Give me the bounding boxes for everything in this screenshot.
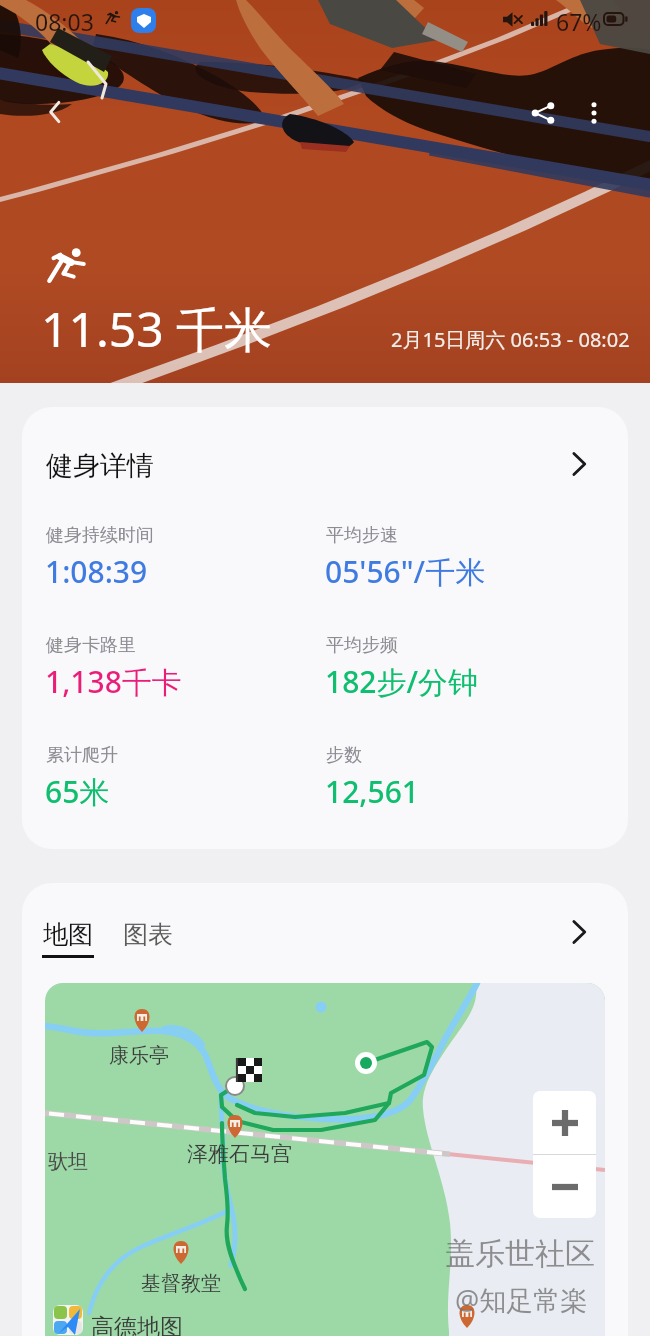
staticText: 平均步频 <box>326 634 398 657</box>
button[interactable]: Open map <box>562 915 596 949</box>
staticText: 知坑 <box>550 1179 584 1200</box>
staticText: 1,138千卡 <box>45 661 182 702</box>
staticText: 地图 <box>43 919 93 950</box>
staticText: 健身卡路里 <box>46 634 136 657</box>
staticText: 基督教堂 <box>141 1271 221 1296</box>
staticText: 1:08:39 <box>45 551 148 592</box>
staticText: 12,561 <box>325 771 419 812</box>
staticText: @知足常楽 <box>455 1281 588 1318</box>
staticText: 67% <box>556 6 602 37</box>
button[interactable]: Share <box>517 87 569 139</box>
staticText: 健身持续时间 <box>46 524 154 547</box>
staticText: 驮坦 <box>48 1149 88 1174</box>
staticText: 182步/分钟 <box>325 661 479 702</box>
button[interactable]: Zoom out <box>533 1155 596 1218</box>
staticText: 11.53 千米 <box>41 296 273 362</box>
button[interactable]: 健身详情 <box>22 407 628 849</box>
staticText: 2月15日周六 06:53 - 08:02 <box>391 326 630 353</box>
staticText: 步数 <box>326 744 362 767</box>
staticText: 盖乐世社区 <box>445 1235 595 1273</box>
staticText: 05'56"/千米 <box>325 551 486 592</box>
staticText: 高德地图 <box>91 1313 183 1336</box>
button[interactable]: 图表 <box>123 919 173 950</box>
button[interactable]: More options <box>568 87 620 139</box>
button[interactable]: Zoom in <box>533 1091 596 1154</box>
staticText: 健身详情 <box>46 449 154 483</box>
staticText: 平均步速 <box>326 524 398 547</box>
staticText: 康乐亭 <box>109 1043 169 1068</box>
staticText: 泽雅石马宫 <box>187 1141 292 1167</box>
staticText: 图表 <box>123 919 173 950</box>
button[interactable]: 地图 <box>42 919 94 958</box>
staticText: 累计爬升 <box>46 744 118 767</box>
button[interactable]: Back <box>29 86 81 138</box>
staticText: 65米 <box>45 771 110 812</box>
staticText: 08:03 <box>35 6 94 37</box>
